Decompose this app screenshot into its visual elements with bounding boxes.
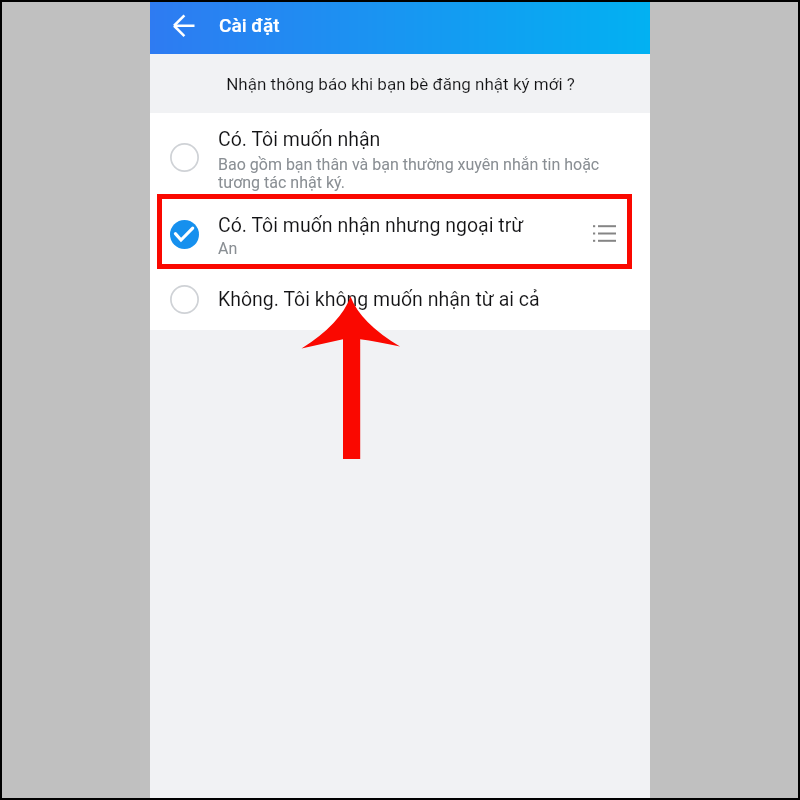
button[interactable]: Back (152, 2, 198, 50)
button[interactable]: Exception list (579, 214, 619, 252)
staticText: Có. Tôi muốn nhận nhưng ngoại trừ (218, 214, 524, 237)
staticText: Nhận thông báo khi bạn bè đăng nhật ký m… (226, 74, 575, 94)
staticText: Không. Tôi không muốn nhận từ ai cả (218, 288, 540, 311)
button[interactable]: Có. Tôi muốn nhận (150, 113, 650, 198)
staticText: Có. Tôi muốn nhận (218, 128, 381, 151)
staticText: Bao gồm bạn thân và bạn thường xuyên nhắ… (218, 155, 603, 192)
staticText: Cài đặt (219, 14, 280, 36)
button[interactable]: Có. Tôi muốn nhận nhưng ngoại trừ (150, 198, 650, 268)
staticText: An (218, 239, 238, 258)
button[interactable]: Không. Tôi không muốn nhận từ ai cả (150, 268, 650, 330)
